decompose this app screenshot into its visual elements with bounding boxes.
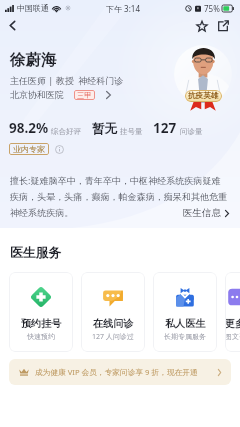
button[interactable]: 业内专家 <box>9 143 49 155</box>
staticText: 更多服务 <box>225 317 240 330</box>
button[interactable]: 医生信息 <box>183 207 229 219</box>
staticText: 北京协和医院 <box>10 89 64 100</box>
staticText: 综合好评 <box>51 127 81 136</box>
staticText: 127 <box>153 119 177 137</box>
staticText: 在线问诊 <box>93 317 134 330</box>
button[interactable]: Doctor photo <box>174 45 232 103</box>
staticText: 长期专属服务 <box>164 332 206 341</box>
button[interactable]: 预约挂号 <box>9 272 73 352</box>
button[interactable]: 私人医生 <box>153 272 217 352</box>
staticText: 私人医生 <box>165 317 206 330</box>
staticText: 擅长:疑难脑卒中，青年卒中，中枢神经系统疾病疑难疾病，头晕，头痛，癫痫，帕金森病… <box>10 174 229 219</box>
staticText: 127 人问诊过 <box>92 332 134 342</box>
staticText: 98.2% <box>9 119 49 137</box>
button[interactable]: 成为健康 VIP 会员，专家问诊享 9 折，现在开通 <box>9 359 231 385</box>
staticText: 成为健康 VIP 会员，专家问诊享 9 折，现在开通 <box>35 367 198 378</box>
staticText: 快速预约 <box>27 332 55 341</box>
staticText: 问诊量 <box>180 127 203 136</box>
button[interactable]: 在线问诊 <box>81 272 145 352</box>
button[interactable]: Favorite <box>192 16 211 35</box>
staticText: 75% <box>204 3 220 14</box>
staticText: 挂号量 <box>120 127 143 136</box>
staticText: 下午 3:14 <box>106 3 140 14</box>
staticText: 徐蔚海 <box>10 50 57 70</box>
staticText: 主任医师 | 教授 神经科门诊 <box>10 74 124 86</box>
staticText: 中国联通 <box>17 3 49 13</box>
button[interactable]: Back <box>3 16 22 35</box>
staticText: 医生信息 <box>183 207 221 219</box>
button[interactable]: 更多服务 <box>225 272 240 352</box>
staticText: 抗疫英雄 <box>188 91 219 101</box>
staticText: 业内专家 <box>13 144 45 154</box>
staticText: 预约挂号 <box>21 317 62 330</box>
staticText: 图文咨询等 <box>225 332 240 341</box>
staticText: 医生服务 <box>10 245 62 261</box>
staticText: 三甲 <box>77 91 92 100</box>
staticText: 暂无 <box>92 121 117 137</box>
button[interactable]: Share <box>213 16 232 35</box>
